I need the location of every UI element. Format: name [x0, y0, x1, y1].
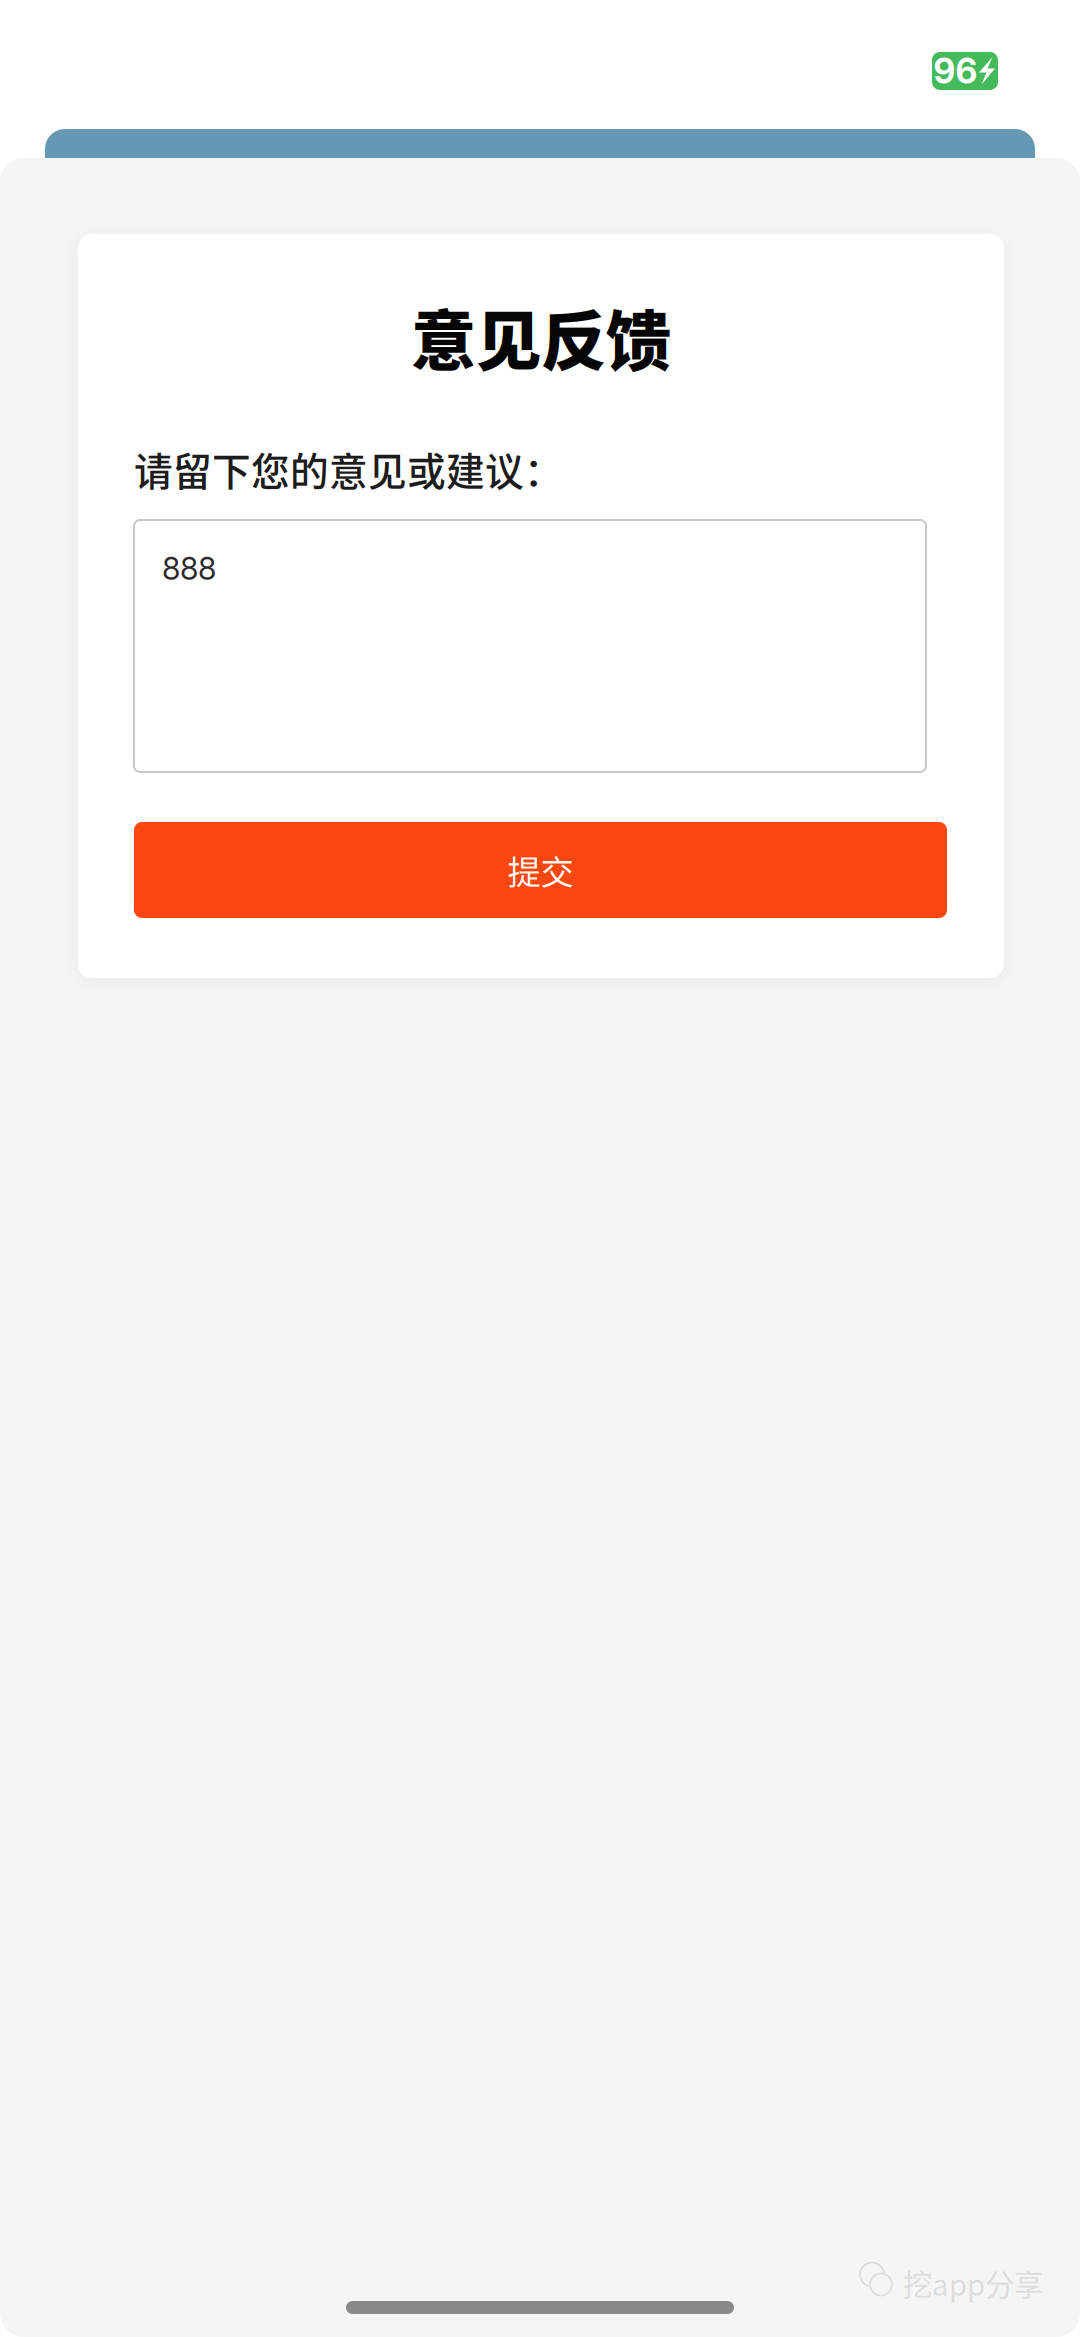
staticText: 意见反馈	[411, 289, 671, 384]
staticText: 888	[162, 550, 216, 587]
staticText: 96	[933, 50, 977, 92]
staticText: 挖app分享	[903, 2262, 1043, 2304]
staticText: 请留下您的意见或建议：	[134, 441, 563, 497]
button[interactable]: 提交	[134, 822, 947, 918]
staticText: 提交	[507, 846, 573, 894]
